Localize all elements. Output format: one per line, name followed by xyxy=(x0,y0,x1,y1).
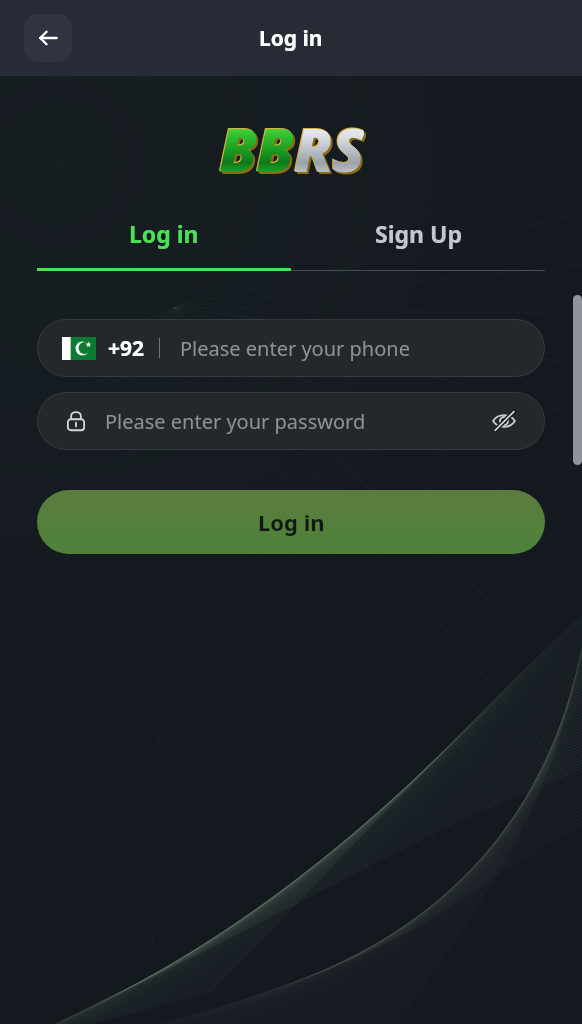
staticText: Sign Up xyxy=(375,218,462,249)
staticText: BB xyxy=(221,110,296,184)
staticText: +92 xyxy=(108,334,145,363)
button[interactable]: Back xyxy=(24,14,72,62)
staticText: Log in xyxy=(259,24,323,53)
staticText: RS xyxy=(294,108,364,182)
staticText: Please enter your phone xyxy=(180,335,410,362)
staticText: Log in xyxy=(129,218,199,249)
staticText: RS xyxy=(293,107,363,181)
staticText: Please enter your password xyxy=(105,408,489,435)
button[interactable]: Sign Up xyxy=(291,212,545,254)
staticText: BB xyxy=(218,107,293,181)
button[interactable]: Log in xyxy=(37,490,545,554)
button[interactable]: +92 xyxy=(37,319,545,377)
staticText: Log in xyxy=(258,507,325,537)
staticText: BB xyxy=(219,108,294,182)
button[interactable]: Log in xyxy=(37,212,291,254)
button[interactable]: Show password xyxy=(489,406,519,436)
button[interactable]: Please enter your password xyxy=(37,392,545,450)
staticText: RS xyxy=(296,110,366,184)
